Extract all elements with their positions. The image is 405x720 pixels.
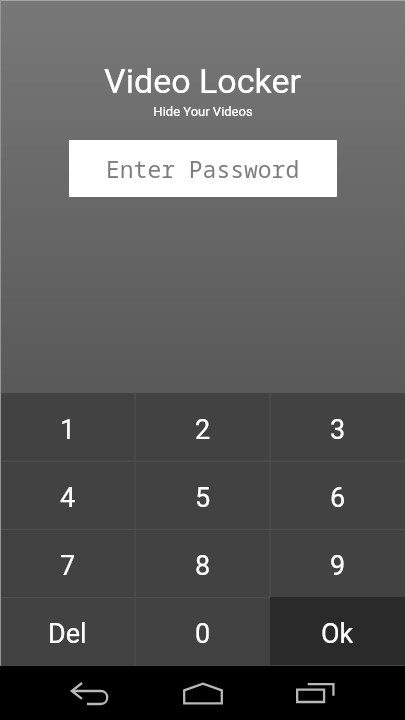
- button[interactable]: 4: [0, 461, 135, 529]
- button[interactable]: 5: [135, 461, 270, 529]
- button[interactable]: 7: [0, 529, 135, 597]
- button[interactable]: Recent apps: [248, 666, 405, 720]
- button[interactable]: Back: [0, 666, 157, 720]
- staticText: 7: [60, 550, 76, 582]
- staticText: 3: [330, 414, 346, 446]
- staticText: 8: [195, 550, 211, 582]
- button[interactable]: Del: [0, 597, 135, 665]
- staticText: Video Locker: [104, 61, 301, 101]
- staticText: Del: [48, 618, 87, 650]
- staticText: 9: [330, 550, 346, 582]
- button[interactable]: 3: [270, 393, 405, 461]
- staticText: Hide Your Videos: [153, 104, 253, 119]
- staticText: 6: [330, 482, 346, 514]
- button[interactable]: 0: [135, 597, 270, 665]
- staticText: 1: [60, 414, 76, 446]
- button[interactable]: Enter Password: [69, 140, 337, 197]
- staticText: Ok: [321, 618, 354, 650]
- staticText: 0: [195, 618, 211, 650]
- button[interactable]: Ok: [270, 597, 405, 665]
- button[interactable]: Home: [157, 666, 248, 720]
- staticText: 2: [195, 414, 211, 446]
- button[interactable]: 6: [270, 461, 405, 529]
- button[interactable]: 2: [135, 393, 270, 461]
- button[interactable]: 9: [270, 529, 405, 597]
- button[interactable]: 1: [0, 393, 135, 461]
- staticText: 4: [60, 482, 76, 514]
- button[interactable]: 8: [135, 529, 270, 597]
- staticText: 5: [195, 482, 211, 514]
- staticText: Enter Password: [106, 153, 300, 184]
